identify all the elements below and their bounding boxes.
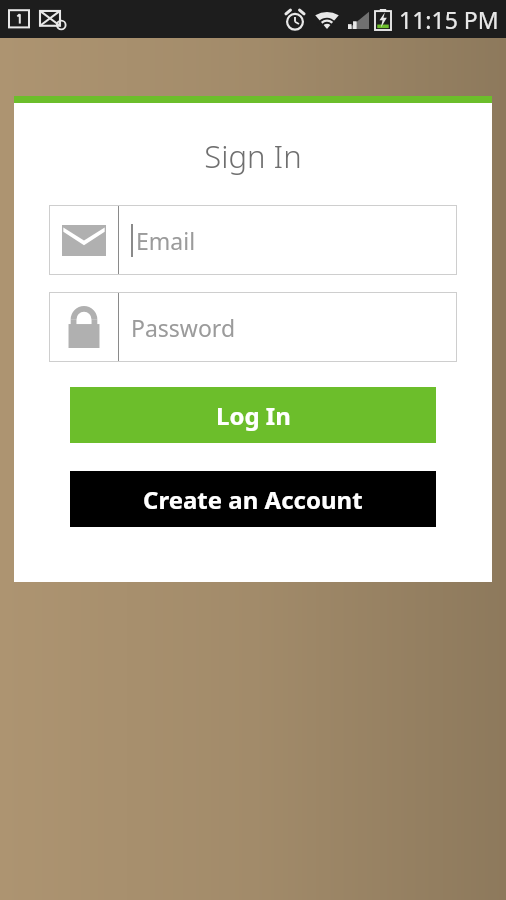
button[interactable]: Log In xyxy=(70,387,436,443)
staticText: Log In xyxy=(216,399,291,432)
other: Password xyxy=(49,292,118,362)
staticText: Email xyxy=(136,225,196,256)
staticText: 11:15 PM xyxy=(399,4,499,35)
other: Email xyxy=(49,205,118,275)
button[interactable]: Password xyxy=(49,292,457,362)
staticText: Sign In xyxy=(14,135,492,177)
staticText: Create an Account xyxy=(143,483,363,516)
button[interactable]: Create an Account xyxy=(70,471,436,527)
button[interactable]: Email xyxy=(49,205,457,275)
staticText: Password xyxy=(131,312,236,343)
